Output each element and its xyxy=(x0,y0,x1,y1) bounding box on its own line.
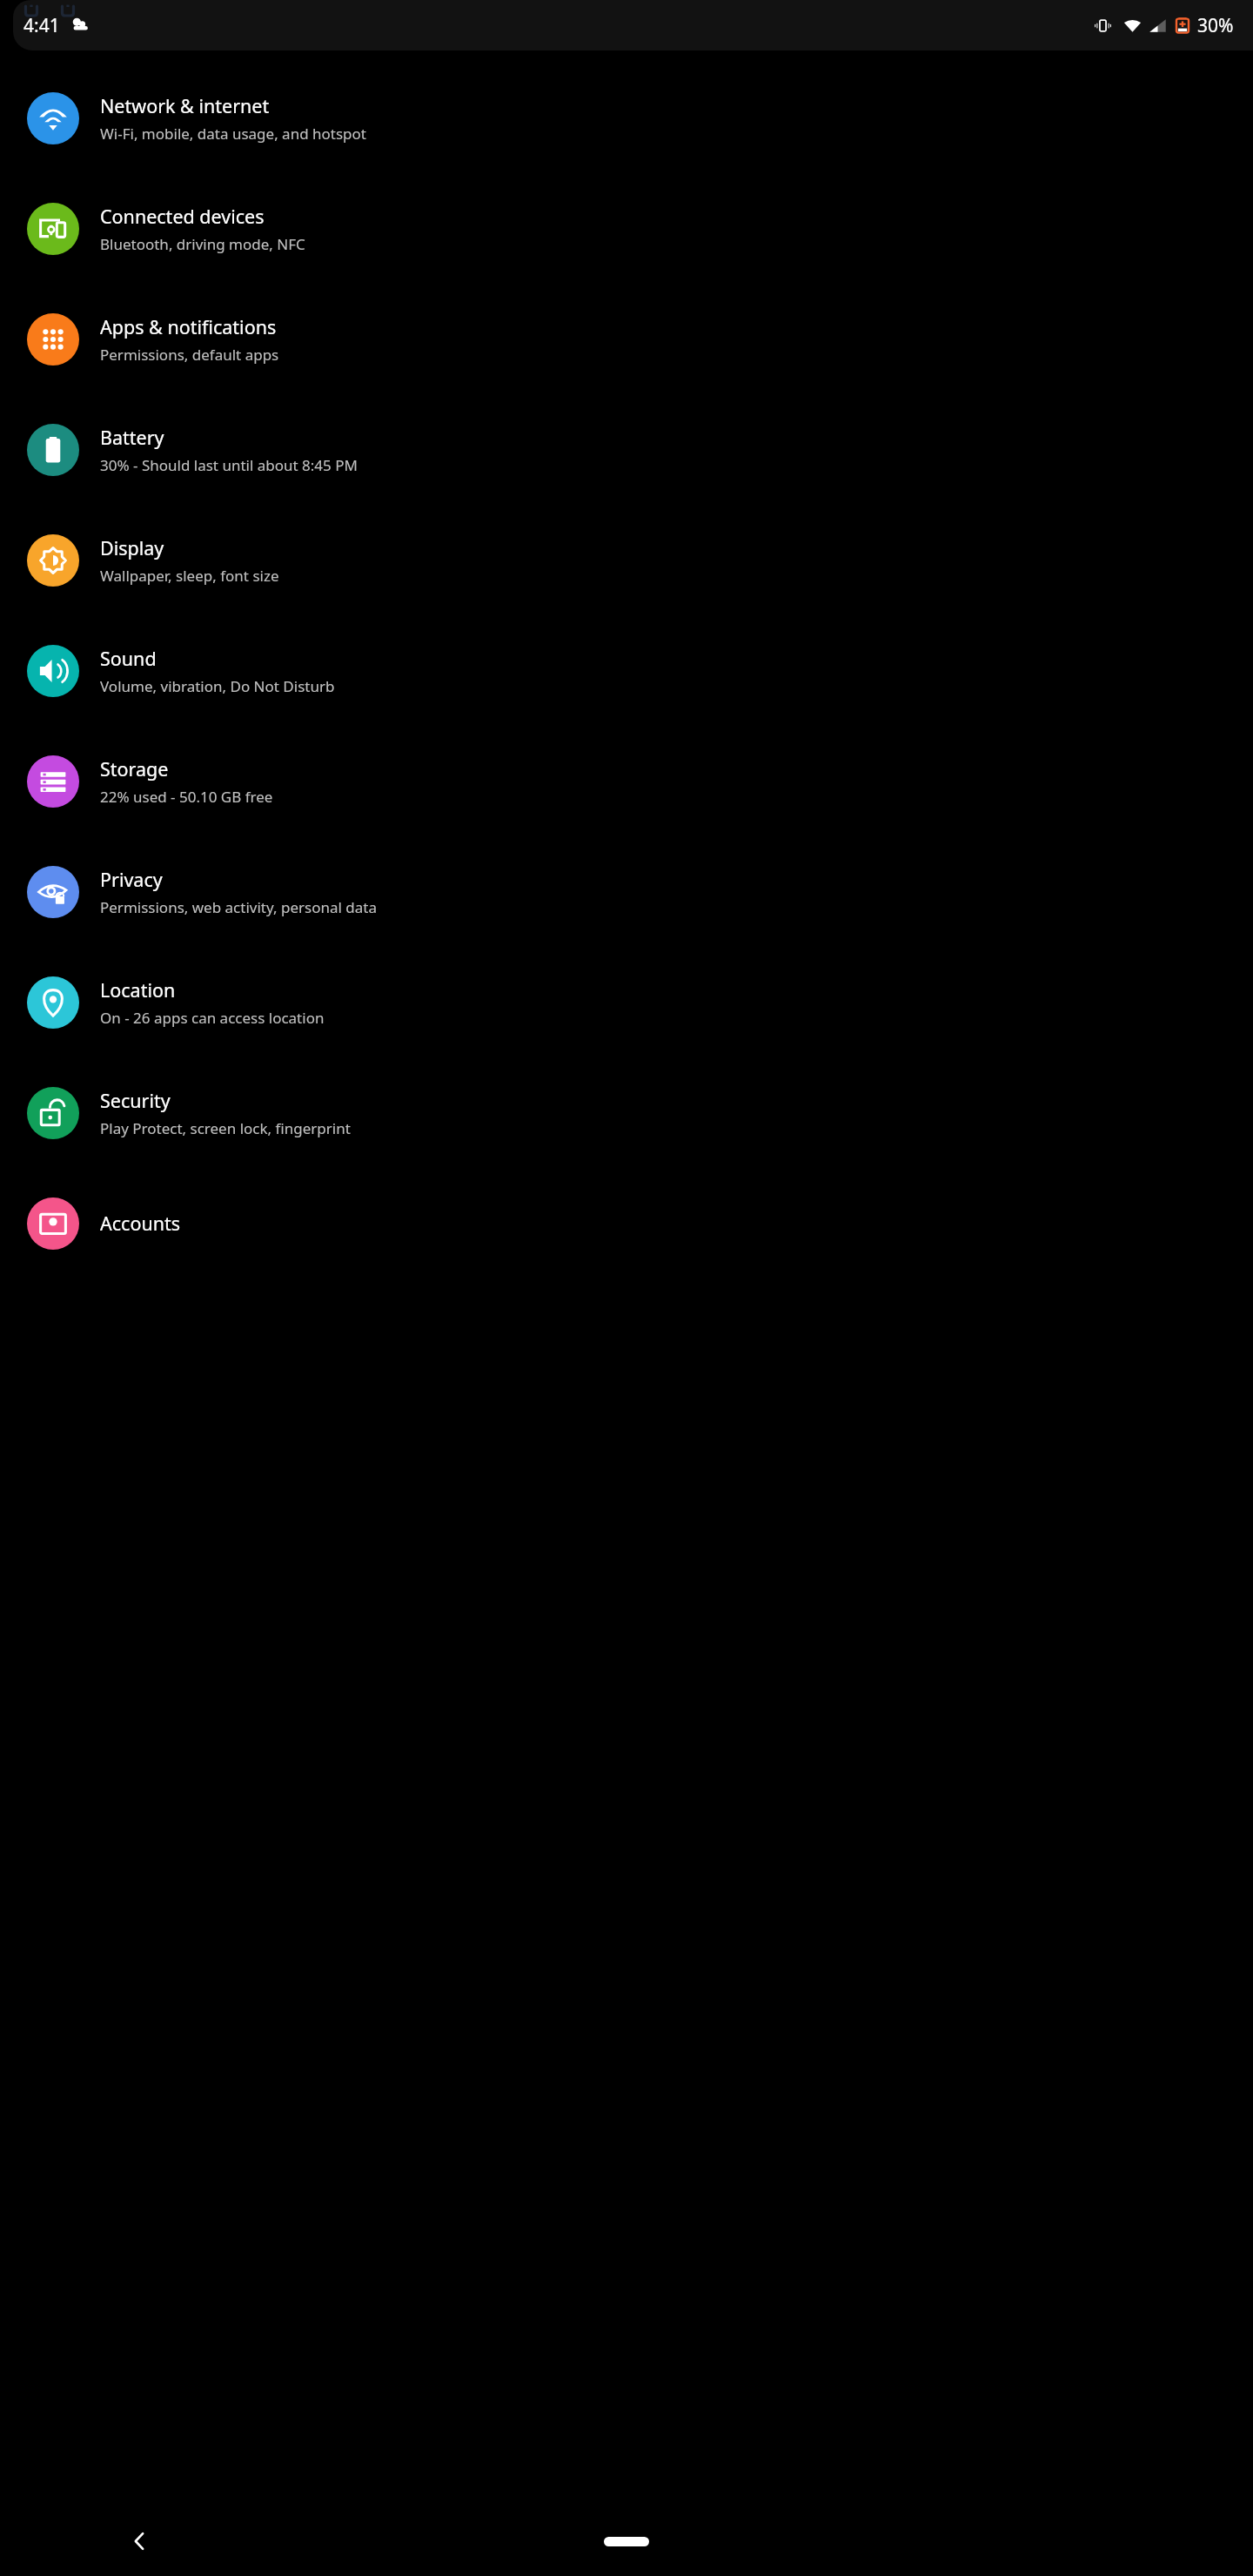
button[interactable]: Home xyxy=(574,2519,679,2563)
button[interactable]: Network and internet xyxy=(0,63,1253,173)
button[interactable]: Sound xyxy=(0,615,1253,726)
button[interactable]: Security xyxy=(0,1057,1253,1168)
button[interactable]: Location xyxy=(0,947,1253,1057)
staticText: On - 26 apps can access location xyxy=(100,1008,325,1028)
staticText: Security xyxy=(100,1088,171,1113)
button[interactable]: Connected devices xyxy=(0,173,1253,284)
staticText: 30% xyxy=(1197,13,1234,38)
staticText: Apps & notifications xyxy=(100,314,277,339)
staticText: Volume, vibration, Do Not Disturb xyxy=(100,676,335,696)
staticText: Battery xyxy=(100,425,164,450)
staticText: Connected devices xyxy=(100,204,265,229)
staticText: Accounts xyxy=(100,1211,181,1236)
staticText: Storage xyxy=(100,756,169,782)
button[interactable]: Storage xyxy=(0,726,1253,836)
button[interactable]: Display xyxy=(0,505,1253,615)
staticText: Permissions, default apps xyxy=(100,345,279,365)
button[interactable]: Back xyxy=(113,2515,165,2567)
staticText: Display xyxy=(100,535,164,560)
button[interactable]: Accounts xyxy=(0,1168,1253,1278)
button[interactable]: Battery xyxy=(0,394,1253,505)
staticText: 4:41 xyxy=(23,13,60,38)
staticText: Sound xyxy=(100,646,157,671)
staticText: Play Protect, screen lock, fingerprint xyxy=(100,1118,351,1138)
staticText: Network & internet xyxy=(100,93,270,118)
staticText: Permissions, web activity, personal data xyxy=(100,897,377,917)
button[interactable]: Privacy xyxy=(0,836,1253,947)
staticText: Privacy xyxy=(100,867,163,892)
staticText: Wallpaper, sleep, font size xyxy=(100,566,279,586)
staticText: Location xyxy=(100,977,176,1003)
staticText: Bluetooth, driving mode, NFC xyxy=(100,234,305,254)
staticText: Wi-Fi, mobile, data usage, and hotspot xyxy=(100,124,366,144)
staticText: 22% used - 50.10 GB free xyxy=(100,787,273,807)
staticText: 30% - Should last until about 8:45 PM xyxy=(100,455,358,475)
button[interactable]: Apps and notifications xyxy=(0,284,1253,394)
